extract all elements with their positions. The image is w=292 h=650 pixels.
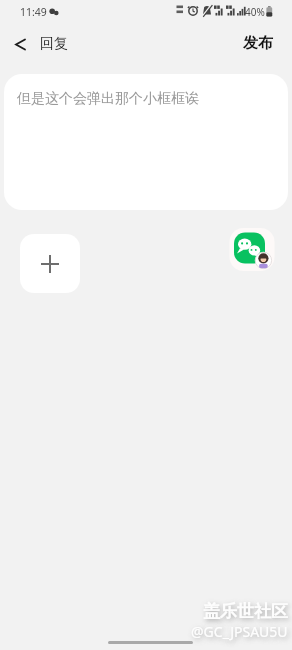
button[interactable] bbox=[228, 226, 276, 274]
staticText: 回复 bbox=[40, 35, 68, 53]
button[interactable] bbox=[4, 30, 36, 58]
staticText: 盖乐世社区 bbox=[203, 601, 288, 622]
staticText: @GC_JPSAU5U bbox=[191, 622, 288, 641]
button[interactable] bbox=[20, 234, 80, 293]
button[interactable]: 发布 bbox=[236, 30, 280, 56]
staticText: 但是这个会弹出那个小框框诶 bbox=[17, 90, 199, 108]
staticText: 11:49 bbox=[20, 5, 47, 19]
staticText: 40% bbox=[245, 5, 265, 19]
button[interactable]: 但是这个会弹出那个小框框诶 bbox=[4, 74, 288, 210]
staticText: 发布 bbox=[243, 34, 273, 53]
